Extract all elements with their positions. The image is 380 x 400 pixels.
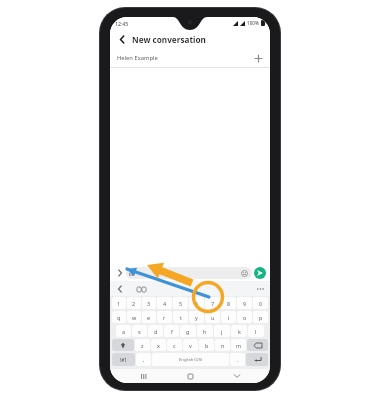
staticText: 4	[163, 300, 167, 307]
button[interactable]: e	[142, 311, 156, 323]
button[interactable]: l	[248, 325, 264, 337]
button[interactable]: .	[230, 353, 245, 366]
staticText: w	[132, 314, 137, 321]
staticText: 3	[147, 300, 151, 307]
staticText: ,	[143, 356, 145, 363]
button[interactable]: 7	[205, 297, 220, 309]
button[interactable]: Back	[110, 29, 270, 49]
button[interactable]: Emoji	[240, 269, 249, 278]
button[interactable]: 8	[221, 297, 236, 309]
staticText: f	[171, 328, 173, 335]
button[interactable]: Add recipient	[253, 53, 263, 63]
button[interactable]: Shift	[112, 339, 134, 351]
button[interactable]: d	[148, 325, 163, 337]
button[interactable]: c	[167, 339, 182, 351]
button[interactable]: t	[173, 311, 188, 323]
button[interactable]: m	[231, 339, 246, 351]
button[interactable]: f	[164, 325, 179, 337]
staticText: j	[221, 328, 223, 335]
button[interactable]: 6	[189, 297, 204, 309]
staticText: 5	[179, 300, 183, 307]
button[interactable]: Enter	[246, 353, 268, 366]
staticText: .	[237, 356, 239, 363]
staticText: 0	[259, 300, 263, 307]
staticText: b	[205, 342, 209, 349]
button[interactable]: k	[231, 325, 247, 337]
button[interactable]: Stickers	[135, 284, 147, 294]
staticText: 1	[117, 300, 121, 307]
staticText: Helen Example	[117, 54, 253, 62]
staticText: g	[186, 328, 190, 335]
button[interactable]: Recents	[131, 369, 157, 383]
button[interactable]: b	[199, 339, 214, 351]
staticText: 100%	[247, 20, 259, 26]
staticText: 8	[227, 300, 231, 307]
button[interactable]: 0	[253, 297, 268, 309]
staticText: r	[163, 314, 166, 321]
button[interactable]: 4	[157, 297, 172, 309]
button[interactable]: 5	[173, 297, 188, 309]
staticText: m	[236, 342, 242, 349]
button[interactable]: 2	[127, 297, 141, 309]
button[interactable]: Emoji	[126, 267, 252, 279]
staticText: s	[138, 328, 141, 335]
button[interactable]: More	[255, 284, 265, 294]
staticText: English (US)	[179, 357, 203, 363]
staticText: x	[157, 342, 160, 349]
staticText: 9	[243, 300, 247, 307]
staticText: c	[173, 342, 176, 349]
staticText: !#1	[120, 357, 127, 363]
button[interactable]: Send	[254, 267, 266, 279]
button[interactable]: s	[132, 325, 147, 337]
button[interactable]: p	[253, 311, 268, 323]
button[interactable]: Home	[177, 369, 203, 383]
button[interactable]: 9	[237, 297, 252, 309]
staticText: d	[154, 328, 158, 335]
button[interactable]: English (US)	[152, 353, 229, 366]
button[interactable]: n	[215, 339, 230, 351]
staticText: e	[147, 314, 151, 321]
staticText: v	[189, 342, 192, 349]
button[interactable]: v	[183, 339, 198, 351]
staticText: t	[180, 314, 182, 321]
staticText: k	[238, 328, 241, 335]
staticText: q	[117, 314, 121, 321]
button[interactable]: y	[189, 311, 204, 323]
button[interactable]: i	[221, 311, 236, 323]
button[interactable]: Back	[116, 33, 128, 45]
staticText: 6	[195, 300, 199, 307]
button[interactable]: !#1	[112, 353, 135, 366]
button[interactable]: ,	[136, 353, 151, 366]
staticText: New conversation	[132, 34, 206, 45]
button[interactable]: x	[151, 339, 166, 351]
staticText: h	[203, 328, 207, 335]
button[interactable]: Collapse toolbar	[115, 284, 125, 294]
staticText: o	[243, 314, 247, 321]
staticText: 2	[132, 300, 136, 307]
button[interactable]: Backspace	[247, 339, 268, 351]
staticText: u	[211, 314, 215, 321]
staticText: a	[122, 328, 126, 335]
staticText: 12:45	[115, 20, 129, 27]
button[interactable]: o	[237, 311, 252, 323]
button[interactable]: h	[197, 325, 213, 337]
staticText: n	[221, 342, 225, 349]
staticText: 7	[211, 300, 215, 307]
button[interactable]: j	[214, 325, 230, 337]
staticText: z	[141, 342, 144, 349]
button[interactable]: z	[135, 339, 150, 351]
button[interactable]: r	[157, 311, 172, 323]
button[interactable]: 3	[142, 297, 156, 309]
staticText: i	[228, 314, 230, 321]
button[interactable]: More options	[114, 267, 125, 278]
button[interactable]: Helen Example	[110, 49, 270, 67]
button[interactable]: w	[127, 311, 141, 323]
button[interactable]: g	[180, 325, 196, 337]
button[interactable]: q	[112, 311, 126, 323]
staticText: p	[259, 314, 263, 321]
button[interactable]: a	[116, 325, 131, 337]
button[interactable]: u	[205, 311, 220, 323]
button[interactable]: Back	[224, 369, 250, 383]
button[interactable]: 1	[112, 297, 126, 309]
staticText: l	[255, 328, 257, 335]
